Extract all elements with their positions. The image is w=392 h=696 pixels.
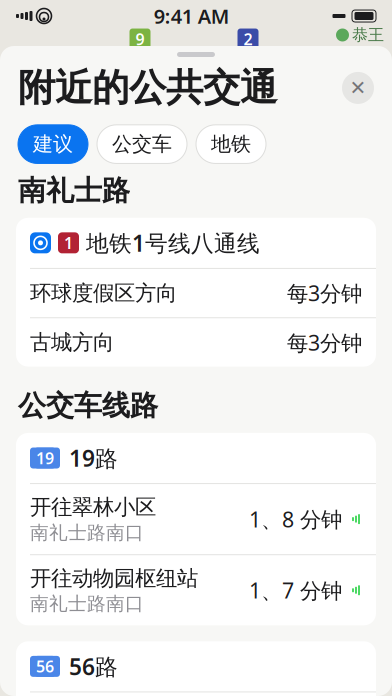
button[interactable]: 环球度假区方向 [16, 269, 376, 317]
staticText: 地铁1号线八通线 [86, 228, 260, 258]
staticText: 建议 [33, 132, 73, 156]
staticText: 古城方向 [30, 329, 114, 355]
staticText: 56路 [69, 651, 118, 681]
button[interactable]: 1 [16, 218, 376, 268]
staticText: 19路 [69, 443, 118, 473]
staticText: 56 [36, 656, 54, 677]
button[interactable]: 地铁 [196, 125, 266, 163]
staticText: 19 [36, 447, 54, 469]
staticText: 南礼士路南口 [30, 521, 144, 544]
button[interactable]: 开往翠林小区 [16, 484, 376, 554]
button[interactable]: 开往大观园公交场站 [16, 692, 376, 696]
staticText: 地铁 [211, 132, 251, 156]
staticText: 每3分钟 [287, 279, 362, 307]
staticText: 1、7 分钟 [249, 576, 342, 604]
staticText: 9 [135, 28, 144, 50]
staticText: 1 [64, 232, 73, 253]
staticText: 公交车线路 [18, 389, 158, 423]
button[interactable]: 公交车 [97, 125, 187, 163]
staticText: 1、8 分钟 [249, 505, 342, 533]
button[interactable]: 建议 [18, 125, 88, 163]
staticText: 9:41 AM [154, 3, 230, 29]
button[interactable]: 19 [16, 433, 376, 483]
staticText: 公交车 [112, 132, 172, 156]
staticText: 开往动物园枢纽站 [30, 565, 198, 591]
staticText: 每3分钟 [287, 328, 362, 356]
staticText: 附近的公共交通 [18, 65, 277, 111]
staticText: 开往翠林小区 [30, 494, 156, 520]
staticText: ✕ [349, 77, 366, 99]
staticText: 南礼士路南口 [30, 592, 144, 615]
button[interactable]: 关闭 [342, 72, 374, 104]
button[interactable]: 开往动物园枢纽站 [16, 555, 376, 625]
button[interactable]: 古城方向 [16, 318, 376, 366]
staticText: 南礼士路 [18, 173, 130, 208]
button[interactable]: 56 [16, 641, 376, 691]
staticText: 恭王 [352, 25, 384, 45]
staticText: 2 [243, 28, 252, 50]
staticText: 环球度假区方向 [30, 280, 177, 306]
